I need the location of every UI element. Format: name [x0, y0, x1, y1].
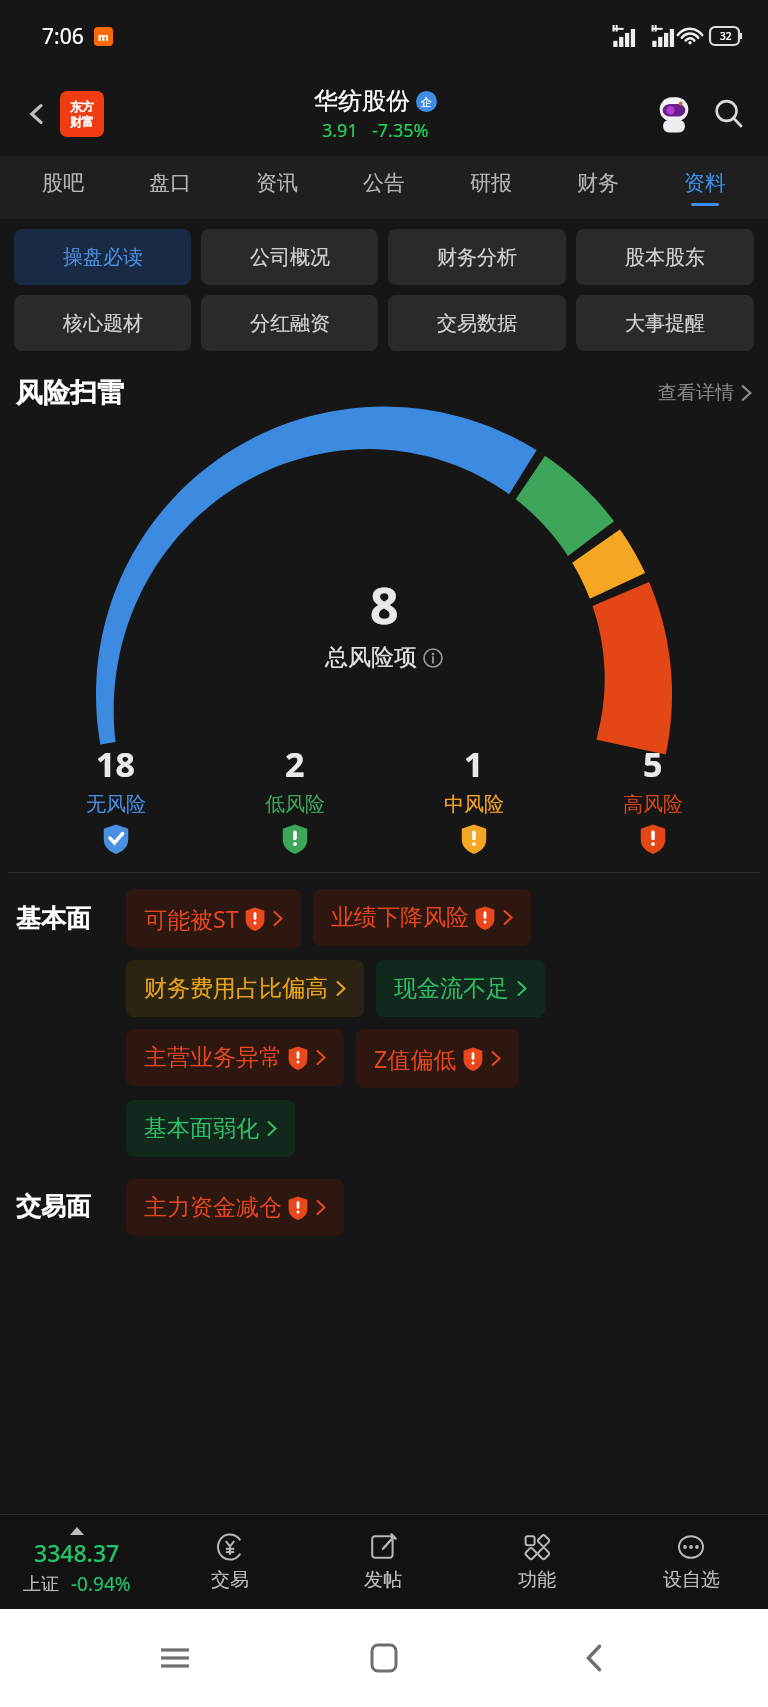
staticText: 大事提醒 [625, 311, 705, 336]
button[interactable]: 5 [563, 741, 742, 854]
button[interactable]: 核心题材 [14, 295, 191, 351]
staticText: m [98, 29, 109, 44]
button[interactable]: 财务费用占比偏高 [126, 960, 364, 1017]
staticText: 华纺股份 [314, 86, 410, 116]
button[interactable]: 主力资金减仓 [126, 1179, 344, 1236]
button[interactable]: Assistant [648, 88, 700, 140]
staticText: 高风险 [623, 792, 683, 817]
staticText: 中风险 [444, 792, 504, 817]
staticText: 公司概况 [250, 245, 330, 270]
staticText: 低风险 [265, 792, 325, 817]
button[interactable]: Search [704, 89, 754, 139]
staticText: 可能被ST [144, 903, 239, 934]
staticText: 上证 [23, 1573, 59, 1596]
staticText: 操盘必读 [63, 245, 143, 270]
staticText: 功能 [518, 1568, 556, 1592]
staticText: 风险扫雷 [16, 376, 124, 410]
staticText: 财富 [70, 114, 94, 129]
button[interactable]: 交易数据 [388, 295, 566, 351]
staticText: 5 [643, 741, 663, 787]
button[interactable]: 交易 [153, 1514, 306, 1609]
staticText: 发帖 [364, 1568, 402, 1592]
staticText: 研报 [470, 170, 512, 196]
button[interactable]: 财务分析 [388, 229, 566, 285]
staticText: 分红融资 [250, 311, 330, 336]
button[interactable]: 股本股东 [576, 229, 754, 285]
button[interactable]: 业绩下降风险 [313, 889, 531, 946]
staticText: 东方 [70, 99, 94, 114]
button[interactable]: 公告 [330, 156, 437, 219]
staticText: 股吧 [42, 170, 84, 196]
staticText: 交易面 [16, 1191, 91, 1222]
staticText: 3348.37 [34, 1537, 120, 1568]
staticText: 主力资金减仓 [144, 1193, 282, 1222]
button[interactable]: 可能被ST [126, 889, 301, 948]
button[interactable]: 操盘必读 [14, 229, 191, 285]
staticText: 公告 [363, 170, 405, 196]
button[interactable]: 东方财富 [60, 91, 104, 137]
button[interactable]: 18 [26, 741, 205, 854]
button[interactable]: 3348.37 [0, 1527, 153, 1597]
button[interactable]: 财务 [544, 156, 651, 219]
staticText: 2 [285, 741, 305, 787]
staticText: 股本股东 [625, 245, 705, 270]
button[interactable]: Home [349, 1623, 419, 1693]
button[interactable]: 设自选 [614, 1514, 768, 1609]
button[interactable]: 2 [205, 741, 384, 854]
staticText: 设自选 [663, 1568, 720, 1592]
staticText: 1 [464, 741, 484, 787]
button[interactable]: 盘口 [116, 156, 223, 219]
button[interactable]: 基本面弱化 [126, 1100, 295, 1157]
button[interactable]: Z值偏低 [356, 1029, 519, 1088]
staticText: -7.35% [372, 118, 429, 143]
button[interactable]: 1 [384, 741, 563, 854]
button[interactable]: Back [559, 1623, 629, 1693]
staticText: 3.91 [322, 118, 358, 143]
staticText: 业绩下降风险 [331, 903, 469, 932]
button[interactable]: 研报 [437, 156, 544, 219]
staticText: 无风险 [86, 792, 146, 817]
button[interactable]: 资料 [651, 156, 758, 219]
button[interactable]: 分红融资 [201, 295, 378, 351]
button[interactable]: 现金流不足 [376, 960, 545, 1017]
staticText: 财务 [577, 170, 619, 196]
button[interactable]: Menu [140, 1623, 210, 1693]
staticText: 资料 [684, 170, 726, 196]
button[interactable]: 大事提醒 [576, 295, 754, 351]
staticText: 资讯 [256, 170, 298, 196]
staticText: 8 [370, 571, 399, 639]
staticText: 18 [96, 741, 135, 787]
button[interactable]: 发帖 [306, 1514, 460, 1609]
staticText: 现金流不足 [394, 974, 509, 1003]
staticText: 财务费用占比偏高 [144, 974, 328, 1003]
button[interactable]: Back [14, 91, 60, 137]
button[interactable]: 资讯 [223, 156, 330, 219]
staticText: 交易数据 [437, 311, 517, 336]
staticText: -0.94% [71, 1571, 131, 1597]
button[interactable]: 主营业务异常 [126, 1029, 344, 1086]
button[interactable]: 公司概况 [201, 229, 378, 285]
staticText: 7:06 [42, 22, 84, 51]
staticText: 财务分析 [437, 245, 517, 270]
staticText: 交易 [211, 1568, 249, 1592]
staticText: 总风险项 [325, 643, 417, 672]
staticText: 盘口 [149, 170, 191, 196]
staticText: 基本面 [16, 903, 91, 934]
button[interactable]: 股吧 [10, 156, 116, 219]
button[interactable]: 查看详情 [658, 381, 752, 405]
button[interactable]: 功能 [460, 1514, 614, 1609]
staticText: Z值偏低 [374, 1043, 457, 1074]
staticText: 基本面弱化 [144, 1114, 259, 1143]
staticText: 查看详情 [658, 381, 734, 405]
staticText: 32 [720, 29, 732, 43]
staticText: 核心题材 [63, 311, 143, 336]
staticText: 主营业务异常 [144, 1043, 282, 1072]
staticText: 企 [421, 95, 432, 109]
